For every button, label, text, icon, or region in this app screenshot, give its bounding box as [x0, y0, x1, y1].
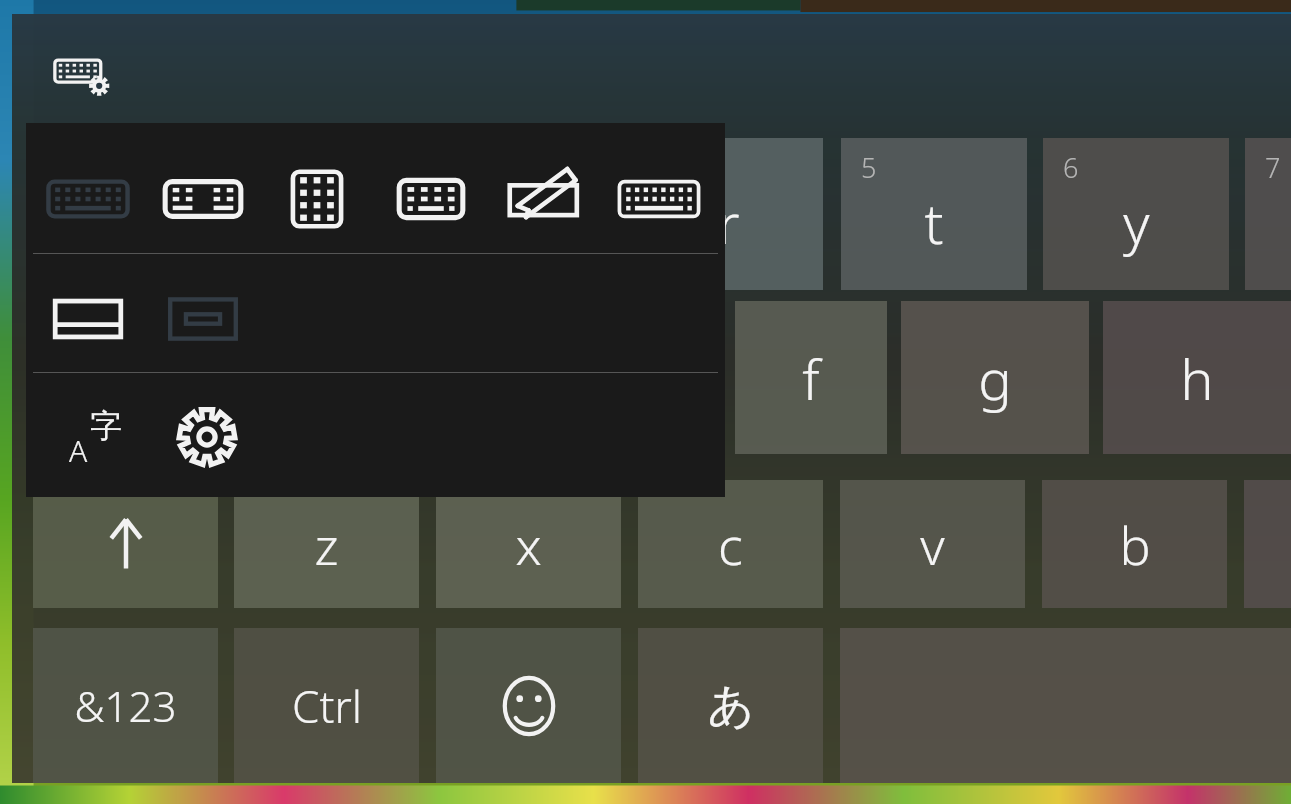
button[interactable]: z [234, 480, 419, 608]
button[interactable]: Settings [176, 406, 238, 468]
staticText: 6 [1063, 149, 1079, 186]
button[interactable]: Handwriting panel [502, 168, 588, 230]
button[interactable]: &123 [33, 628, 218, 783]
staticText: b [1119, 509, 1151, 580]
staticText: r [717, 184, 740, 260]
staticText: y [1123, 184, 1150, 260]
button[interactable]: x [436, 480, 621, 608]
staticText: c [718, 509, 743, 580]
staticText: &123 [74, 677, 177, 734]
button[interactable]: Split keyboard [160, 168, 246, 230]
staticText: 字 [90, 406, 122, 446]
button[interactable]: Compact keyboard [388, 168, 474, 230]
button[interactable]: g [901, 301, 1089, 454]
button[interactable]: Shift [33, 480, 218, 608]
staticText: z [314, 509, 339, 580]
staticText: 5 [861, 149, 877, 186]
staticText: g [978, 340, 1012, 416]
button[interactable]: c [638, 480, 823, 608]
staticText: あ [707, 677, 755, 735]
button[interactable]: Input language [66, 406, 142, 468]
button[interactable]: Floating keyboard [162, 291, 244, 347]
staticText: A [69, 430, 88, 471]
button[interactable]: あ [638, 628, 823, 783]
button[interactable]: Default keyboard, selected [45, 168, 131, 230]
button[interactable]: 5 [841, 138, 1027, 290]
button[interactable]: Emoji [436, 628, 621, 783]
button[interactable]: Ctrl [234, 628, 419, 783]
button[interactable]: Docked keyboard, selected [47, 291, 129, 347]
button[interactable]: One-handed keypad [274, 168, 360, 230]
staticText: t [924, 184, 944, 260]
staticText: v [920, 509, 945, 580]
button[interactable]: v [840, 480, 1025, 608]
staticText: 7 [1265, 149, 1281, 186]
staticText: h [1180, 340, 1214, 416]
button[interactable]: 6 [1043, 138, 1229, 290]
staticText: f [802, 340, 820, 416]
button[interactable]: Keyboard settings [53, 53, 115, 97]
staticText: Ctrl [292, 676, 362, 736]
staticText: x [515, 509, 542, 580]
button[interactable]: Full keyboard [616, 168, 702, 230]
button[interactable]: r [633, 138, 823, 290]
button[interactable]: 7 [1245, 138, 1291, 290]
button[interactable]: h [1103, 301, 1291, 454]
button[interactable]: b [1042, 480, 1227, 608]
button[interactable]: f [735, 301, 887, 454]
